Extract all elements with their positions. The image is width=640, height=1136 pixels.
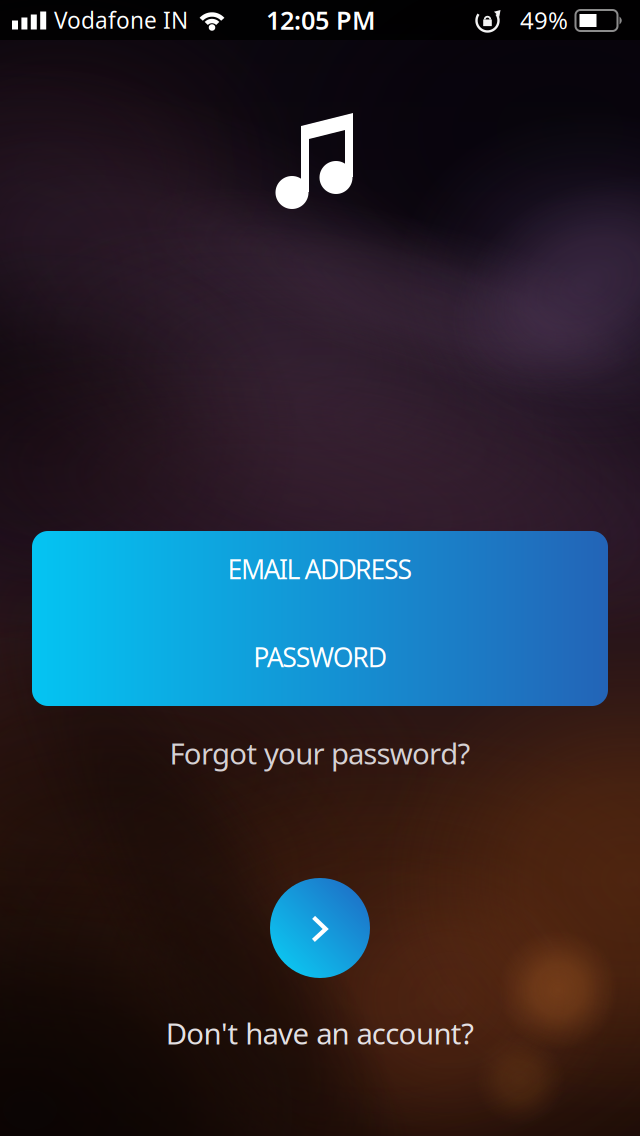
staticText: 49% [520, 4, 568, 36]
staticText: PASSWORD [253, 639, 387, 675]
button[interactable]: Log in [270, 878, 370, 978]
button[interactable]: Forgot your password? [169, 733, 470, 772]
staticText: EMAIL ADDRESS [227, 551, 412, 587]
button[interactable]: Don't have an account? [166, 1013, 474, 1052]
staticText: Forgot your password? [169, 733, 470, 772]
button[interactable]: EMAIL ADDRESS [32, 525, 608, 612]
staticText: Vodafone IN [54, 5, 188, 35]
staticText: Don't have an account? [166, 1013, 474, 1052]
button[interactable]: PASSWORD [32, 613, 608, 700]
staticText: 12:05 PM [266, 3, 376, 37]
